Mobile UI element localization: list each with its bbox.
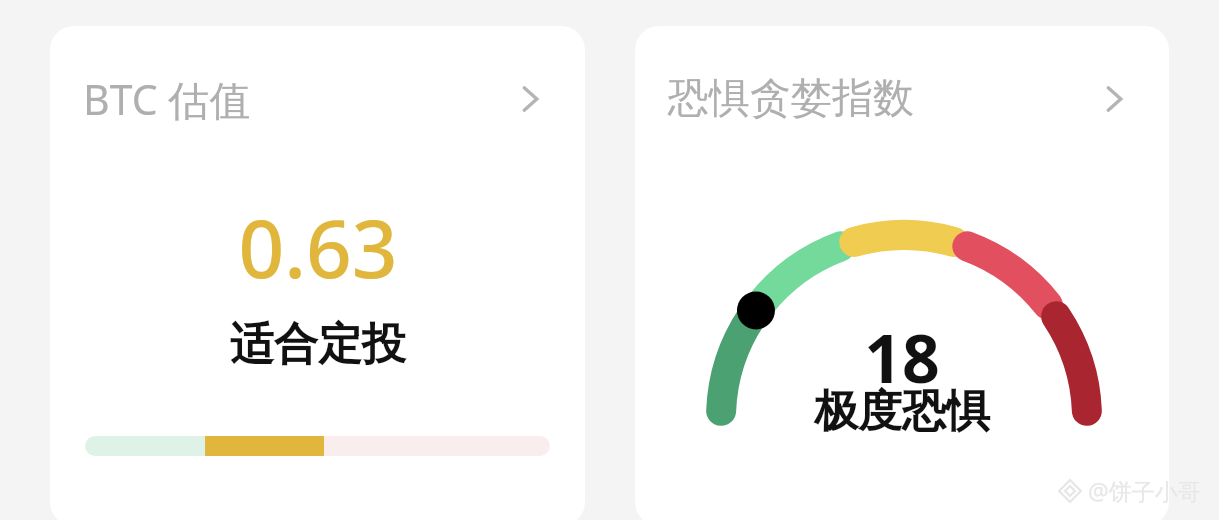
staticText: BTC 估值 — [83, 71, 251, 127]
staticText: 18 — [864, 312, 940, 402]
button[interactable]: 恐惧贪婪指数 — [635, 26, 1169, 520]
button[interactable]: BTC 估值 — [50, 26, 585, 520]
button[interactable]: More — [1089, 74, 1139, 124]
staticText: 适合定投 — [230, 317, 406, 372]
button[interactable]: More — [505, 74, 555, 124]
staticText: 0.63 — [238, 192, 398, 301]
staticText: 极度恐惧 — [814, 384, 990, 439]
staticText: @饼子小哥 — [1088, 475, 1201, 506]
staticText: 恐惧贪婪指数 — [668, 73, 914, 125]
